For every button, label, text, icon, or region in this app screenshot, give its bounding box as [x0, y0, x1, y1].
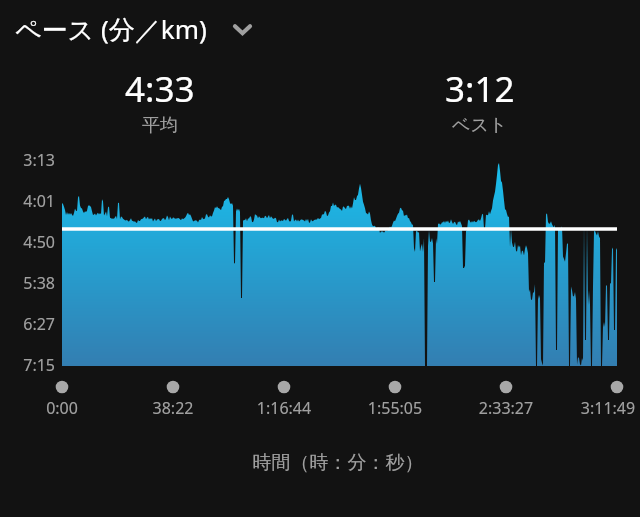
staticText: 3:13 — [2, 149, 55, 171]
staticText: 1:55:05 — [335, 397, 455, 419]
staticText: 38:22 — [113, 397, 233, 419]
staticText: ベスト — [452, 114, 508, 137]
other: Change metric — [233, 22, 252, 36]
staticText: 7:15 — [2, 354, 55, 376]
staticText: 1:16:44 — [224, 397, 344, 419]
staticText: 3:11:49 — [548, 397, 640, 419]
staticText: ペース (分／km) — [15, 11, 207, 47]
button[interactable]: ペース (分／km) — [15, 11, 252, 47]
staticText: 3:12 — [445, 65, 515, 113]
staticText: 2:33:27 — [446, 397, 566, 419]
staticText: 5:38 — [2, 272, 55, 294]
staticText: 4:01 — [2, 190, 55, 212]
staticText: 平均 — [142, 114, 178, 137]
staticText: 6:27 — [2, 313, 55, 335]
staticText: 時間（時：分：秒） — [18, 451, 640, 475]
staticText: 4:50 — [2, 231, 55, 253]
staticText: 0:00 — [2, 397, 122, 419]
staticText: 4:33 — [125, 65, 195, 113]
